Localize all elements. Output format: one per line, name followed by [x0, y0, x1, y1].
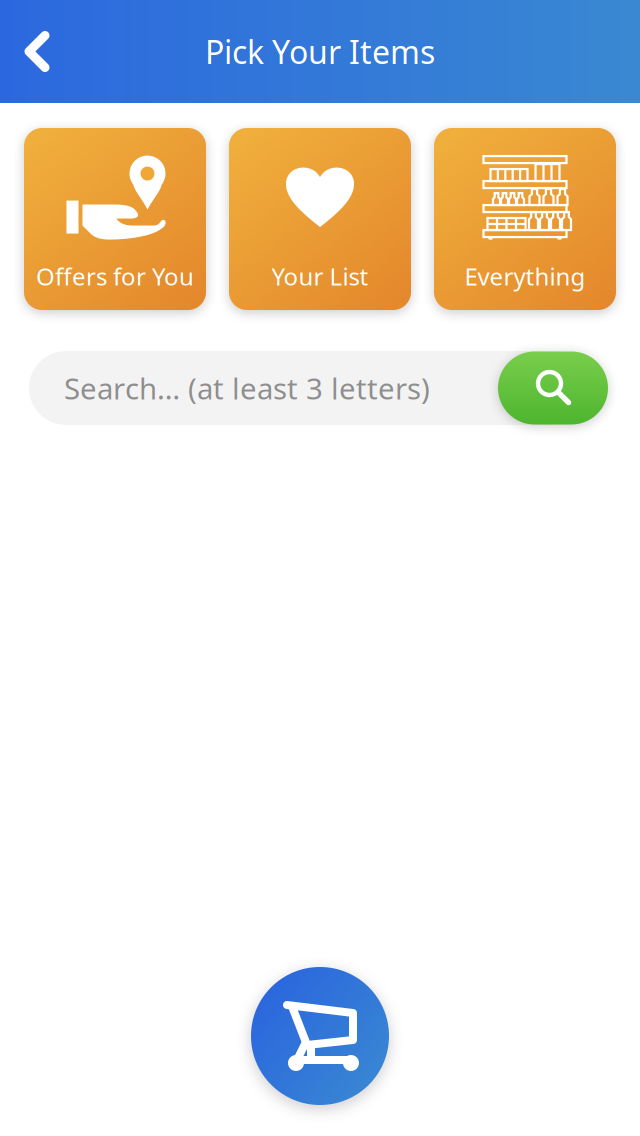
staticText: Search… (at least 3 letters) [64, 368, 430, 407]
button[interactable]: Offers for You [24, 128, 206, 310]
staticText: Your List [271, 260, 368, 292]
staticText: Pick Your Items [205, 30, 435, 73]
button[interactable]: Cart [251, 967, 389, 1105]
button[interactable]: Search [498, 351, 608, 424]
button[interactable]: Your List [229, 128, 411, 310]
button[interactable]: Everything [434, 128, 616, 310]
staticText: Everything [464, 260, 585, 292]
button[interactable]: Back [0, 0, 74, 103]
staticText: Offers for You [36, 260, 194, 292]
